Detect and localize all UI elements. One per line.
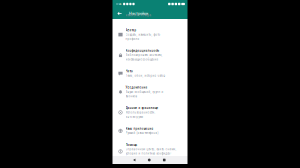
staticText: Русский (язык телефона) — [125, 131, 158, 135]
staticText: Чаты — [125, 70, 132, 73]
staticText: звонков — [125, 95, 137, 98]
button[interactable]: Помощь — [112, 139, 187, 164]
staticText: Использование сети, — [125, 111, 155, 114]
staticText: Уведомления — [125, 86, 147, 89]
staticText: Данные и хранилище — [125, 106, 158, 110]
staticText: 11:04 — [116, 2, 121, 5]
button[interactable]: Язык приложения — [112, 123, 187, 139]
button[interactable]: Home — [142, 156, 157, 164]
staticText: циальности — [125, 156, 143, 160]
staticText: автозагрузка — [125, 115, 143, 118]
staticText: Язык приложения — [125, 127, 153, 130]
button[interactable]: Back — [114, 8, 125, 19]
staticText: Тема, обои, история чатов — [125, 74, 165, 77]
button[interactable]: Чаты — [112, 65, 187, 82]
button[interactable]: Уведомления — [112, 82, 187, 102]
staticText: Конфиденциальность — [125, 49, 159, 52]
staticText: Помощь — [125, 143, 137, 147]
staticText: условия и политика конфиден- — [125, 152, 171, 155]
staticText: Создать, изменить, фото — [125, 33, 160, 36]
staticText: профиля — [125, 37, 139, 41]
staticText: Настройки — [129, 11, 148, 16]
staticText: Заблокировать контакты, — [125, 53, 162, 57]
staticText: исчезающие сообщения — [125, 58, 158, 61]
staticText: Справочный центр, связь с нами, — [125, 148, 176, 151]
button[interactable]: Back — [127, 156, 142, 164]
button[interactable]: Recents — [157, 156, 172, 164]
staticText: изменение номера — [125, 14, 151, 17]
staticText: Аватар — [125, 29, 136, 32]
button[interactable]: Аватар — [112, 24, 187, 45]
button[interactable]: Данные и хранилище — [112, 102, 187, 123]
staticText: Звуки сообщений, групп и — [125, 90, 163, 94]
button[interactable]: Конфиденциальность — [112, 45, 187, 65]
